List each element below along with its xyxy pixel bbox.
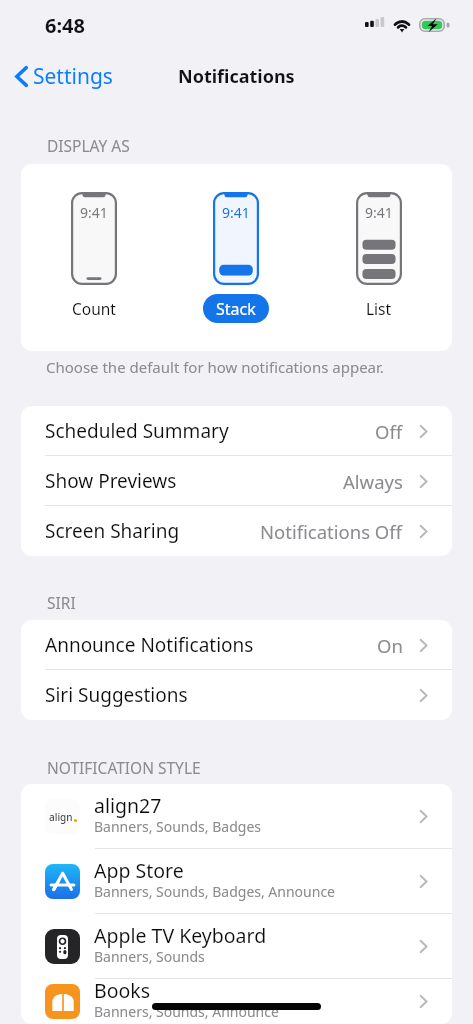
staticText: Stack [216, 298, 256, 320]
button[interactable]: Siri Suggestions [21, 670, 452, 720]
staticText: DISPLAY AS [47, 135, 130, 156]
button[interactable]: Books [21, 979, 452, 1024]
button[interactable]: 9:41 [54, 192, 134, 319]
staticText: Books [94, 977, 151, 1004]
staticText: On [377, 633, 403, 658]
staticText: Banners, Sounds, Badges [94, 817, 261, 836]
button[interactable]: Show Previews [21, 456, 452, 506]
staticText: Notifications [178, 64, 295, 89]
button[interactable]: Announce Notifications [21, 620, 452, 670]
button[interactable]: 9:41 [339, 192, 419, 319]
button[interactable]: Back to Settings [9, 54, 119, 99]
staticText: Announce Notifications [45, 632, 254, 658]
staticText: Settings [33, 62, 113, 91]
staticText: 6:48 [45, 12, 85, 39]
staticText: align [49, 810, 73, 824]
button[interactable]: 9:41 [196, 192, 276, 323]
staticText: Count [72, 298, 116, 319]
staticText: NOTIFICATION STYLE [47, 757, 201, 778]
button[interactable]: Screen Sharing [21, 506, 452, 556]
staticText: 9:41 [80, 203, 108, 222]
staticText: Banners, Sounds, Announce [94, 1002, 279, 1020]
staticText: Always [343, 469, 403, 494]
button[interactable]: App Store [21, 849, 452, 914]
staticText: Notifications Off [260, 519, 403, 544]
button[interactable]: align [21, 784, 452, 849]
staticText: Banners, Sounds [94, 947, 205, 966]
staticText: Apple TV Keyboard [94, 922, 267, 949]
staticText: align27 [94, 792, 162, 819]
staticText: List [366, 298, 392, 319]
staticText: Siri Suggestions [45, 682, 188, 708]
staticText: 9:41 [365, 203, 393, 222]
staticText: Off [375, 419, 403, 444]
staticText: Banners, Sounds, Badges, Announce [94, 882, 336, 901]
staticText: 9:41 [222, 203, 250, 222]
button[interactable]: Apple TV Keyboard [21, 914, 452, 979]
staticText: SIRI [47, 592, 76, 613]
staticText: Screen Sharing [45, 518, 180, 544]
staticText: Choose the default for how notifications… [46, 357, 384, 377]
staticText: Show Previews [45, 468, 177, 494]
staticText: Scheduled Summary [45, 418, 229, 444]
staticText: App Store [94, 857, 184, 884]
button[interactable]: Scheduled Summary [21, 406, 452, 456]
